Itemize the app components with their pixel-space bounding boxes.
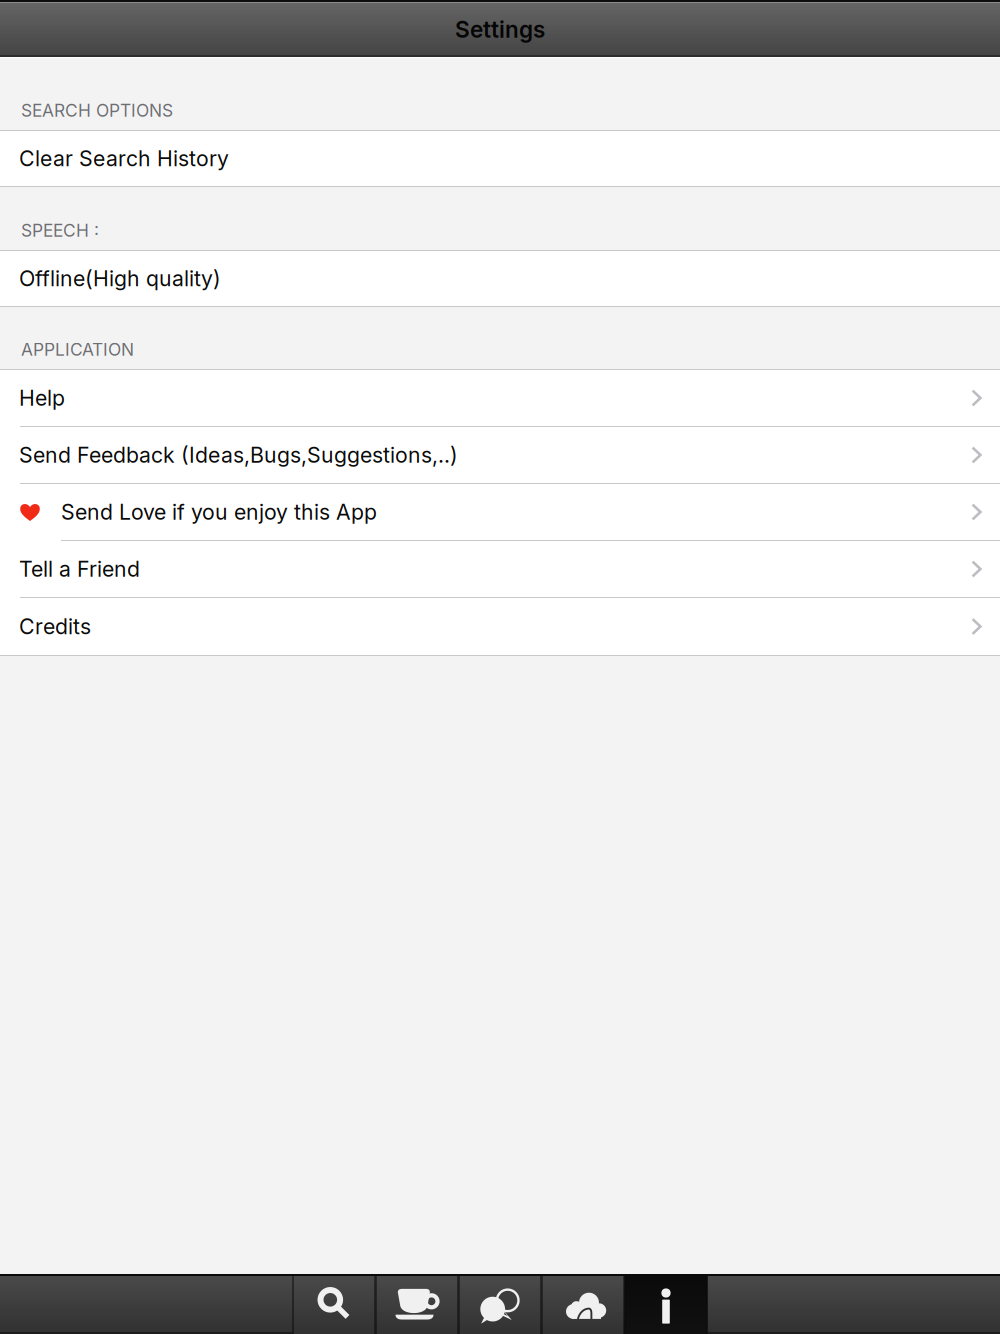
staticText: Send Love if you enjoy this App: [61, 499, 377, 525]
staticText: SPEECH :: [21, 220, 99, 241]
button[interactable]: Weather: [541, 1276, 624, 1334]
staticText: Help: [19, 385, 65, 411]
staticText: Credits: [19, 614, 91, 639]
button[interactable]: Offline(High quality): [0, 251, 1000, 306]
staticText: APPLICATION: [21, 339, 134, 360]
button[interactable]: Clear Search History: [0, 131, 1000, 186]
button[interactable]: Help: [0, 370, 1000, 426]
staticText: Tell a Friend: [19, 556, 140, 582]
button[interactable]: Credits: [0, 598, 1000, 655]
button[interactable]: Search: [292, 1276, 375, 1334]
button[interactable]: Tell a Friend: [0, 541, 1000, 597]
staticText: SEARCH OPTIONS: [21, 100, 173, 121]
button[interactable]: Chat: [458, 1276, 541, 1334]
staticText: Clear Search History: [19, 146, 229, 171]
button[interactable]: Info: [624, 1276, 707, 1334]
staticText: Send Feedback (Ideas,Bugs,Suggestions,..…: [19, 442, 458, 468]
button[interactable]: Cafes: [375, 1276, 458, 1334]
staticText: Settings: [455, 16, 545, 43]
button[interactable]: Send Love if you enjoy this App: [0, 484, 1000, 540]
button[interactable]: Send Feedback (Ideas,Bugs,Suggestions,..…: [0, 427, 1000, 483]
staticText: Offline(High quality): [19, 266, 221, 291]
